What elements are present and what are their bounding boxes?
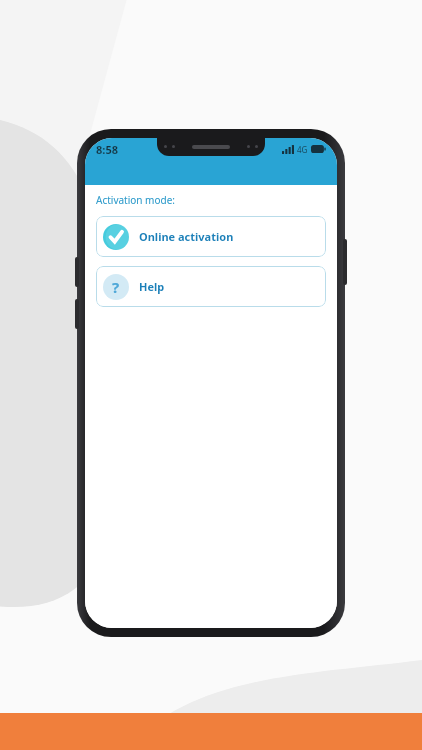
other: Help bbox=[103, 274, 129, 300]
staticText: Help bbox=[139, 279, 165, 294]
staticText: 8:58 bbox=[96, 142, 118, 157]
staticText: Activation mode: bbox=[96, 193, 175, 207]
other: Online activation bbox=[103, 224, 129, 250]
staticText: ? bbox=[112, 277, 120, 297]
staticText: Online activation bbox=[139, 229, 234, 244]
button[interactable]: Online activation bbox=[96, 216, 326, 257]
staticText: 4G bbox=[297, 144, 308, 155]
button[interactable]: Help bbox=[96, 266, 326, 307]
